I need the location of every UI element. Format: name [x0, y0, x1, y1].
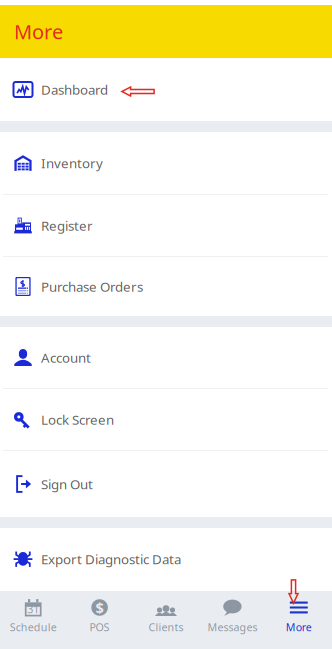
- staticText: 31: [27, 602, 39, 616]
- button[interactable]: Purchase Orders: [0, 257, 332, 316]
- staticText: Dashboard: [41, 81, 108, 98]
- button[interactable]: Messages: [199, 591, 266, 649]
- staticText: More: [286, 620, 312, 634]
- button[interactable]: More: [266, 591, 332, 649]
- staticText: Clients: [148, 620, 183, 634]
- button[interactable]: Clients: [133, 591, 199, 649]
- staticText: Inventory: [41, 154, 103, 172]
- staticText: $: [96, 598, 104, 617]
- staticText: Account: [41, 349, 91, 366]
- button[interactable]: 31: [0, 591, 66, 649]
- staticText: POS: [90, 620, 110, 634]
- button[interactable]: Dashboard: [0, 58, 332, 121]
- button[interactable]: Register: [0, 195, 332, 256]
- staticText: Schedule: [10, 620, 57, 634]
- staticText: Export Diagnostic Data: [41, 550, 181, 568]
- staticText: Purchase Orders: [41, 278, 143, 295]
- button[interactable]: Lock Screen: [0, 389, 332, 450]
- button[interactable]: Sign Out: [0, 451, 332, 517]
- staticText: Register: [41, 217, 93, 234]
- button[interactable]: Account: [0, 327, 332, 388]
- button[interactable]: Inventory: [0, 132, 332, 194]
- staticText: Messages: [207, 620, 257, 634]
- button[interactable]: $: [66, 591, 133, 649]
- staticText: Sign Out: [41, 475, 93, 493]
- button[interactable]: Export Diagnostic Data: [0, 528, 332, 590]
- staticText: Lock Screen: [41, 411, 114, 428]
- staticText: More: [14, 18, 63, 45]
